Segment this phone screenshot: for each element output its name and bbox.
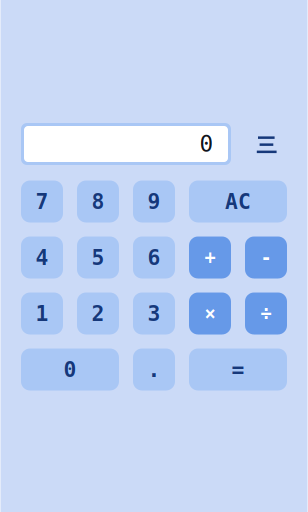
button[interactable]: AC (189, 180, 287, 222)
staticText: × (204, 303, 215, 324)
staticText: 7 (35, 189, 48, 214)
button[interactable]: Menu (257, 135, 277, 153)
staticText: = (231, 357, 244, 382)
button[interactable]: 0 (21, 123, 231, 165)
button[interactable]: 4 (21, 236, 63, 278)
staticText: 0 (199, 131, 213, 157)
button[interactable]: 8 (77, 180, 119, 222)
staticText: - (260, 247, 271, 268)
staticText: + (204, 247, 215, 268)
button[interactable]: = (189, 348, 287, 390)
button[interactable]: 0 (21, 348, 119, 390)
button[interactable]: + (189, 236, 231, 278)
button[interactable]: - (245, 236, 287, 278)
button[interactable]: 7 (21, 180, 63, 222)
button[interactable]: ÷ (245, 292, 287, 334)
button[interactable]: 9 (133, 180, 175, 222)
button[interactable]: 2 (77, 292, 119, 334)
staticText: AC (225, 189, 251, 214)
button[interactable]: 1 (21, 292, 63, 334)
staticText: 4 (35, 245, 48, 270)
staticText: 3 (147, 301, 160, 326)
staticText: . (147, 357, 160, 382)
button[interactable]: 6 (133, 236, 175, 278)
button[interactable]: 3 (133, 292, 175, 334)
staticText: 2 (91, 301, 104, 326)
staticText: 5 (91, 245, 104, 270)
staticText: 1 (35, 301, 48, 326)
staticText: 0 (63, 357, 76, 382)
button[interactable]: 5 (77, 236, 119, 278)
staticText: 9 (147, 189, 160, 214)
button[interactable]: . (133, 348, 175, 390)
staticText: ÷ (260, 303, 271, 324)
staticText: 8 (91, 189, 104, 214)
staticText: 6 (147, 245, 160, 270)
button[interactable]: × (189, 292, 231, 334)
